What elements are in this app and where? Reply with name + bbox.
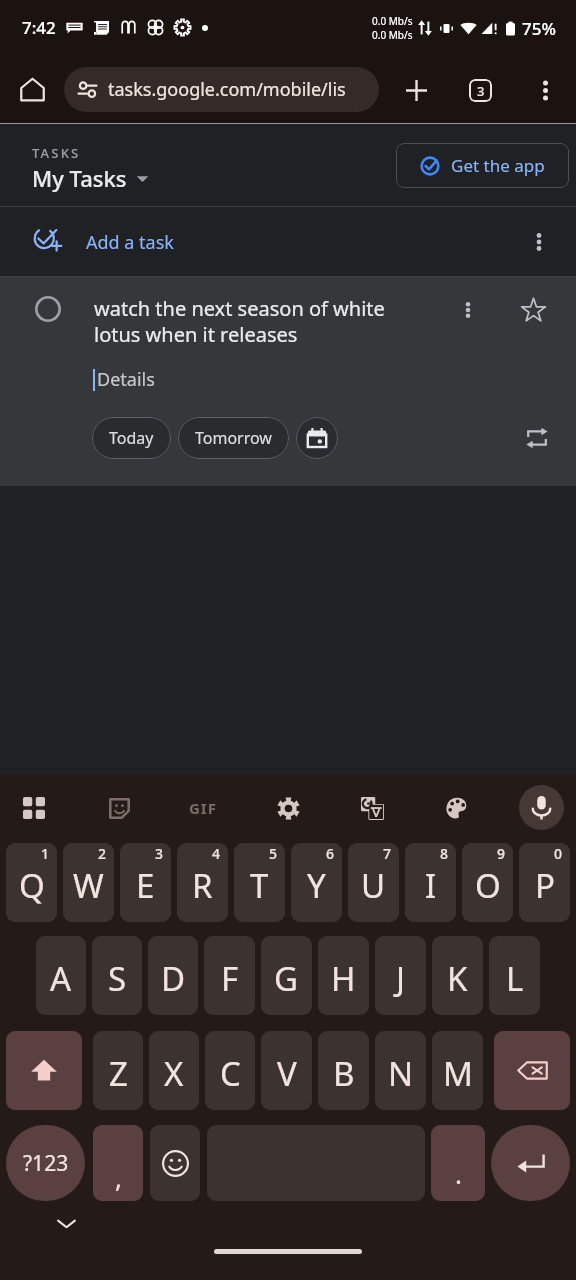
button[interactable]: R [177, 843, 228, 922]
button[interactable]: V [261, 1031, 312, 1110]
button[interactable]: E [120, 843, 171, 922]
staticText: I [425, 863, 437, 908]
button[interactable]: U [348, 843, 399, 922]
button[interactable]: I [405, 843, 456, 922]
staticText: Today [109, 427, 154, 449]
button[interactable]: Tabs [459, 69, 501, 111]
staticText: C [220, 1051, 241, 1096]
button[interactable]: L [489, 936, 540, 1015]
staticText: E [136, 863, 155, 908]
staticText: 0.0 Mb/s [372, 28, 413, 42]
staticText: O [475, 863, 501, 908]
button[interactable]: Apps [12, 786, 56, 830]
staticText: H [331, 956, 356, 1001]
button[interactable]: Today [92, 417, 171, 459]
button[interactable]: D [148, 936, 198, 1015]
button[interactable]: K [432, 936, 483, 1015]
button[interactable]: Emoji [150, 1125, 200, 1201]
button[interactable]: Add a task [0, 207, 576, 277]
button[interactable]: Settings [266, 786, 310, 830]
button[interactable]: . [431, 1125, 485, 1201]
button[interactable]: Shift [6, 1031, 82, 1110]
staticText: , [115, 1160, 122, 1195]
staticText: B [333, 1051, 355, 1096]
staticText: 75% [522, 17, 556, 40]
staticText: 8 [440, 844, 449, 863]
button[interactable]: S [92, 936, 142, 1015]
button[interactable]: Task options [452, 294, 484, 326]
button[interactable]: ?123 [6, 1125, 85, 1201]
staticText: Get the app [451, 154, 545, 177]
staticText: TASKS [32, 144, 81, 162]
staticText: V [277, 1051, 297, 1096]
button[interactable]: Get the app [396, 143, 569, 188]
button[interactable]: Pick date [296, 417, 338, 459]
staticText: 0.0 Mb/s [372, 14, 413, 28]
button[interactable]: G [261, 936, 312, 1015]
button[interactable]: B [318, 1031, 369, 1110]
staticText: P [535, 863, 555, 908]
button[interactable]: Tomorrow [178, 417, 289, 459]
button[interactable]: More options [524, 69, 566, 111]
staticText: M [443, 1051, 473, 1096]
staticText: W [73, 863, 104, 908]
staticText: Z [109, 1051, 128, 1096]
staticText: 4 [212, 844, 221, 863]
button[interactable]: C [205, 1031, 255, 1110]
staticText: tasks.google.com/mobile/lis [108, 77, 346, 102]
button[interactable]: F [204, 936, 255, 1015]
button[interactable]: Y [291, 843, 342, 922]
button[interactable]: W [63, 843, 114, 922]
button[interactable]: Hide keyboard [48, 1205, 84, 1241]
staticText: Tomorrow [195, 427, 272, 449]
button[interactable]: Stickers [97, 786, 141, 830]
staticText: S [108, 956, 127, 1001]
button[interactable]: X [149, 1031, 199, 1110]
staticText: Q [19, 863, 45, 908]
staticText: ?123 [23, 1149, 69, 1178]
staticText: L [506, 956, 524, 1001]
button[interactable]: tasks.google.com/mobile/lis [64, 67, 379, 112]
staticText: My Tasks [32, 163, 127, 193]
button[interactable]: P [519, 843, 570, 922]
button[interactable]: Enter [491, 1125, 570, 1201]
button[interactable]: Voice input [519, 785, 564, 830]
staticText: Add a task [86, 230, 174, 255]
button[interactable]: , [93, 1125, 143, 1201]
button[interactable]: A [36, 936, 86, 1015]
button[interactable]: New tab [395, 69, 437, 111]
button[interactable]: M [432, 1031, 483, 1110]
staticText: 9 [497, 844, 506, 863]
button[interactable]: Backspace [494, 1031, 570, 1110]
button[interactable]: GIF [181, 786, 225, 830]
button[interactable]: Z [93, 1031, 143, 1110]
staticText: R [192, 863, 213, 908]
staticText: 1 [41, 844, 50, 863]
button[interactable]: J [375, 936, 426, 1015]
button[interactable]: N [375, 1031, 426, 1110]
staticText: G [274, 956, 299, 1001]
button[interactable]: Mark complete [35, 296, 61, 322]
button[interactable]: H [318, 936, 369, 1015]
staticText: 3 [155, 844, 164, 863]
staticText: D [161, 956, 186, 1001]
staticText: A [50, 956, 72, 1001]
button[interactable]: Home [12, 69, 53, 110]
staticText: 7 [383, 844, 392, 863]
button[interactable]: Q [6, 843, 57, 922]
staticText: 3 [477, 82, 485, 100]
button[interactable]: Translate [350, 786, 394, 830]
button[interactable]: T [234, 843, 285, 922]
button[interactable]: List options [521, 224, 557, 260]
staticText: 2 [98, 844, 107, 863]
button[interactable]: Repeat [520, 421, 554, 455]
button[interactable]: Star task [514, 290, 552, 328]
staticText: U [361, 863, 386, 908]
button[interactable]: Themes [435, 786, 479, 830]
staticText: X [164, 1051, 184, 1096]
staticText: N [388, 1051, 414, 1096]
button[interactable]: O [462, 843, 513, 922]
staticText: 5 [269, 844, 278, 863]
staticText: . [455, 1156, 462, 1191]
